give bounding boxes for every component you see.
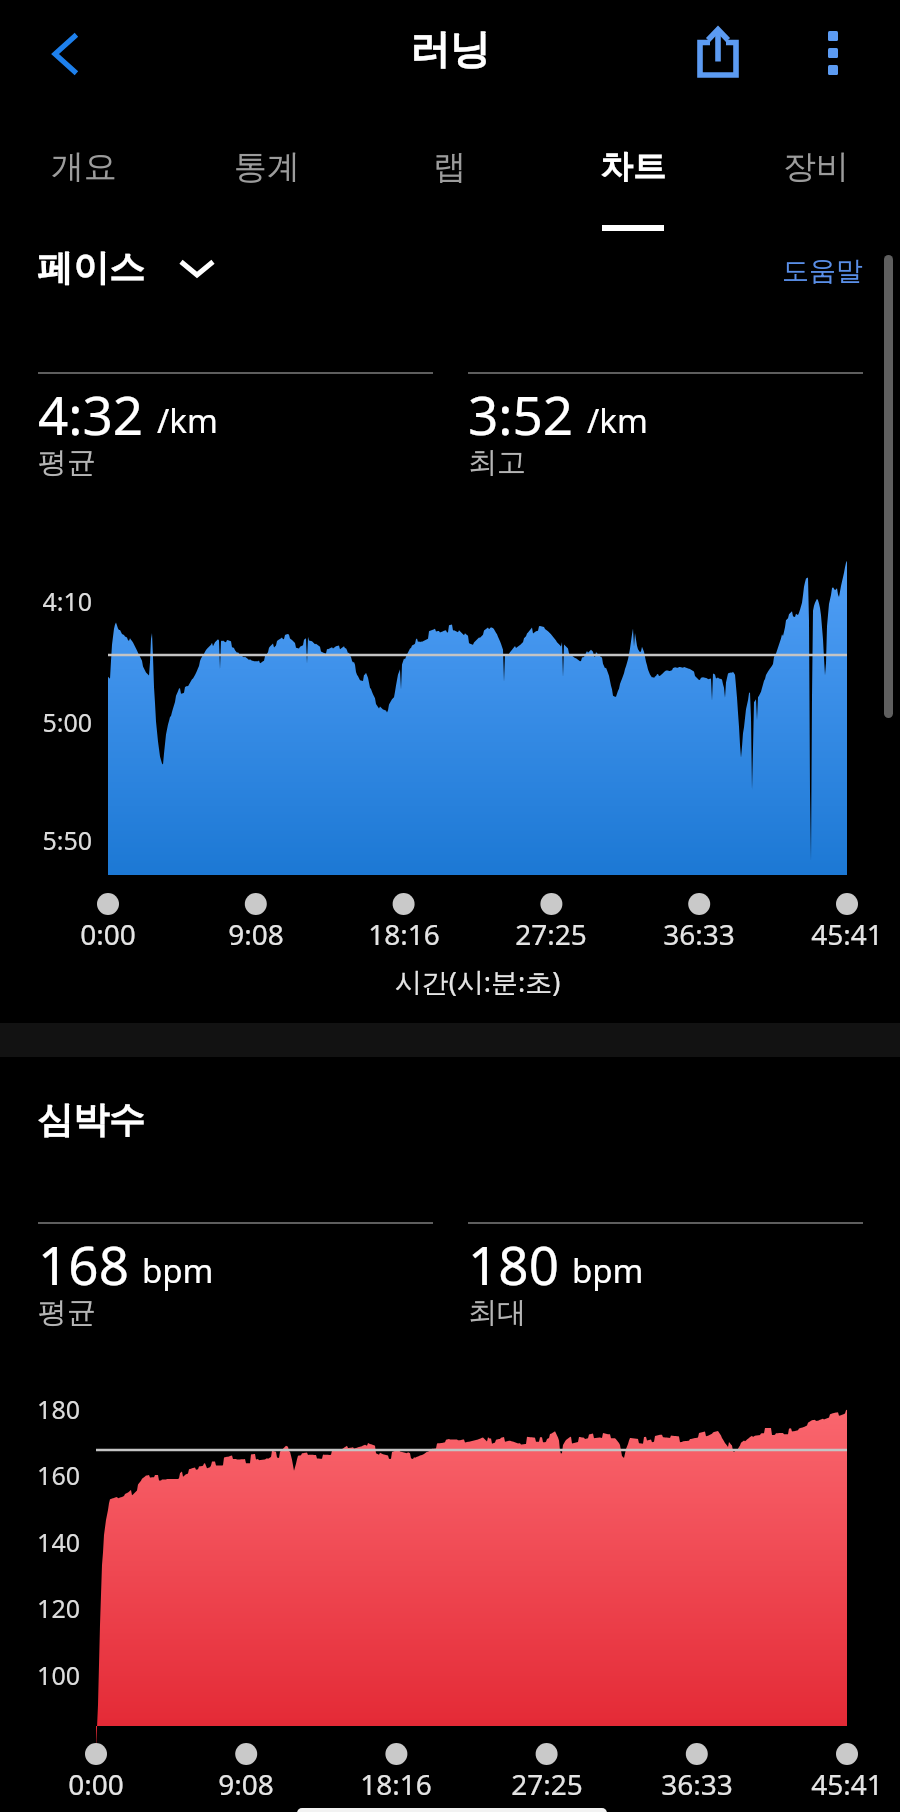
staticText: 통계 — [234, 146, 300, 188]
staticText: 45:41 — [767, 1765, 900, 1803]
staticText: 18:16 — [316, 1765, 476, 1803]
button[interactable]: 통계 — [177, 118, 357, 236]
staticText: 평균 — [38, 1294, 96, 1331]
button[interactable]: 차트 — [543, 118, 723, 236]
staticText: 100 — [0, 1658, 80, 1692]
staticText: 168 — [38, 1228, 129, 1300]
staticText: 36:33 — [619, 915, 779, 953]
staticText: 도움말 — [782, 254, 863, 288]
button[interactable]: Back — [22, 11, 106, 95]
button[interactable]: 도움말 — [782, 254, 863, 288]
staticText: 18:16 — [324, 915, 484, 953]
button[interactable]: 랩 — [359, 118, 539, 236]
staticText: bpm — [142, 1248, 214, 1293]
button[interactable]: 개요 — [0, 118, 174, 236]
staticText: 5:50 — [0, 823, 92, 857]
staticText: /km — [587, 398, 648, 443]
staticText: 심박수 — [37, 1097, 145, 1142]
staticText: 120 — [0, 1591, 80, 1625]
button[interactable]: 장비 — [726, 118, 900, 236]
staticText: 평균 — [38, 444, 96, 481]
staticText: 최고 — [468, 444, 526, 481]
staticText: 36:33 — [617, 1765, 777, 1803]
staticText: bpm — [572, 1248, 644, 1293]
staticText: 4:32 — [38, 378, 144, 450]
staticText: /km — [157, 398, 218, 443]
staticText: 시간(시:분:초) — [55, 963, 900, 1000]
button[interactable]: More options — [788, 8, 878, 98]
staticText: 장비 — [783, 146, 849, 188]
staticText: 최대 — [468, 1294, 526, 1331]
staticText: 0:00 — [16, 1765, 176, 1803]
button[interactable]: Share — [671, 1, 761, 91]
staticText: 27:25 — [471, 915, 631, 953]
staticText: 랩 — [433, 146, 466, 188]
staticText: 4:10 — [0, 584, 92, 618]
staticText: 160 — [0, 1458, 80, 1492]
staticText: 9:08 — [166, 1765, 326, 1803]
staticText: 3:52 — [468, 378, 574, 450]
staticText: 180 — [468, 1228, 559, 1300]
staticText: 개요 — [51, 146, 117, 188]
staticText: 0:00 — [28, 915, 188, 953]
staticText: 러닝 — [0, 24, 900, 74]
staticText: 5:00 — [0, 705, 92, 739]
staticText: 140 — [0, 1525, 80, 1559]
button[interactable]: 페이스 — [37, 237, 217, 297]
staticText: 180 — [0, 1392, 80, 1426]
staticText: 27:25 — [467, 1765, 627, 1803]
staticText: 9:08 — [176, 915, 336, 953]
staticText: 페이스 — [37, 245, 145, 290]
staticText: 차트 — [600, 146, 666, 188]
staticText: 45:41 — [767, 915, 900, 953]
